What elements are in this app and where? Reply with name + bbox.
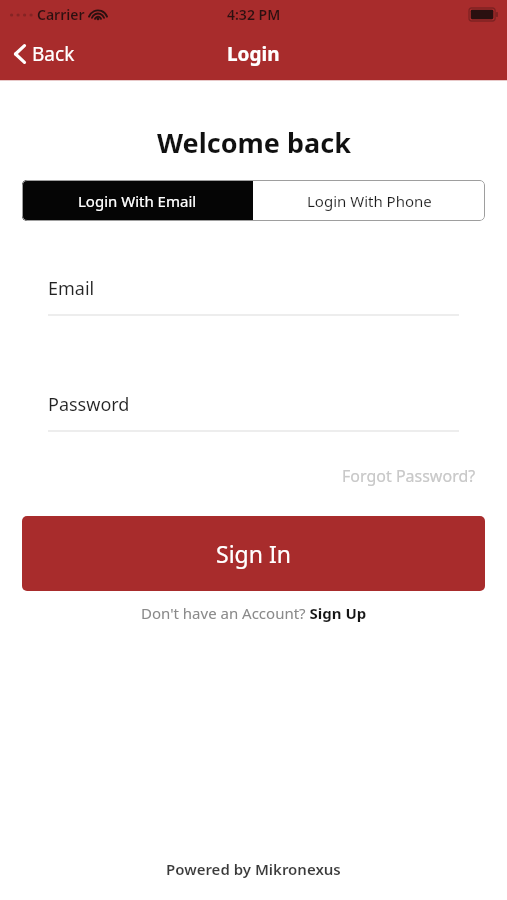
button[interactable]: Login With Email: [22, 180, 253, 221]
staticText: Email: [48, 276, 95, 301]
staticText: Don't have an Account? Sign Up: [141, 603, 367, 623]
button[interactable]: Back: [8, 37, 79, 71]
staticText: Carrier: [37, 5, 85, 24]
staticText: Login With Phone: [307, 191, 432, 211]
staticText: 4:32 PM: [227, 5, 281, 24]
staticText: Password: [48, 392, 130, 417]
staticText: Back: [32, 41, 75, 67]
staticText: Welcome back: [157, 124, 351, 161]
staticText: Login With Email: [78, 191, 197, 211]
staticText: Sign In: [216, 538, 291, 569]
button[interactable]: Login With Phone: [253, 180, 485, 221]
button[interactable]: Forgot Password?: [340, 461, 478, 491]
button[interactable]: Sign In: [22, 516, 485, 591]
staticText: Forgot Password?: [342, 465, 476, 487]
button[interactable]: Don't have an Account? Sign Up: [135, 600, 373, 626]
staticText: Powered by Mikronexus: [166, 859, 341, 879]
staticText: Login: [227, 41, 280, 67]
